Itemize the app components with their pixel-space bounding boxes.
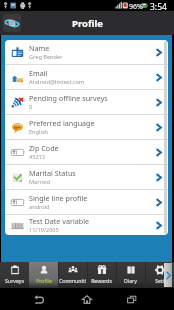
- button[interactable]: Marital Status: [5, 165, 168, 189]
- staticText: 45213: [29, 153, 45, 161]
- staticText: Communities: [58, 277, 87, 284]
- button[interactable]: Diary: [116, 262, 145, 288]
- staticText: Single line profile: [29, 193, 88, 203]
- button[interactable]: Zip Code: [5, 140, 168, 164]
- button[interactable]: Email: [5, 65, 168, 89]
- button[interactable]: Pending offline surveys: [5, 90, 168, 114]
- button[interactable]: Surveys: [0, 262, 29, 288]
- staticText: English: [29, 128, 49, 136]
- button[interactable]: Test Date variable: [5, 215, 168, 235]
- staticText: Preferred language: [29, 118, 95, 128]
- button[interactable]: Single line profile: [5, 190, 168, 214]
- staticText: Pending offline surveys: [29, 93, 108, 103]
- staticText: 11/10/2005: [29, 226, 59, 234]
- staticText: android: [29, 203, 50, 211]
- staticText: Surveys: [5, 277, 24, 284]
- button[interactable]: Rewards: [87, 262, 116, 288]
- staticText: Married: [29, 178, 50, 186]
- button[interactable]: Recents: [121, 288, 142, 310]
- button[interactable]: Communities: [58, 262, 87, 288]
- staticText: Greg Bender: [29, 53, 63, 61]
- staticText: Marital Status: [29, 168, 76, 178]
- staticText: Sett: [155, 277, 165, 284]
- staticText: Android@lmtest.com: [29, 78, 85, 86]
- button[interactable]: Back: [28, 288, 49, 310]
- staticText: Rewards: [91, 277, 112, 284]
- staticText: Diary: [124, 277, 137, 284]
- staticText: 96%: [129, 2, 143, 12]
- staticText: Zip Code: [29, 143, 59, 153]
- staticText: 0: [29, 103, 33, 111]
- button[interactable]: Profile: [29, 262, 58, 288]
- button[interactable]: Name: [5, 40, 168, 64]
- staticText: Profile: [36, 277, 52, 284]
- staticText: 3:54: [150, 1, 167, 12]
- button[interactable]: More tabs: [164, 263, 172, 287]
- staticText: Name: [29, 43, 50, 53]
- button[interactable]: App home: [3, 14, 21, 32]
- staticText: Email: [29, 68, 48, 78]
- staticText: Profile: [72, 17, 103, 30]
- button[interactable]: Home: [76, 288, 97, 310]
- staticText: Test Date variable: [29, 216, 90, 226]
- button[interactable]: Preferred language: [5, 115, 168, 139]
- button[interactable]: Sett: [145, 262, 174, 288]
